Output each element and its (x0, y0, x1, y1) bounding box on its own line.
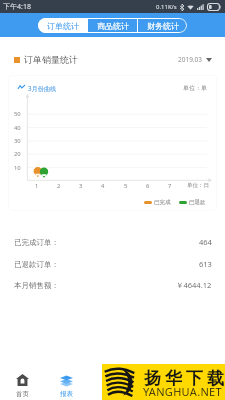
staticText: 单位：日 (187, 182, 209, 189)
staticText: 报表 (60, 390, 73, 398)
staticText: 已退款订单： (14, 260, 59, 269)
staticText: 4 (101, 182, 105, 190)
staticText: 扬华下载 (142, 368, 225, 389)
staticText: 订单统计 (47, 21, 79, 31)
staticText: 30 (14, 137, 21, 145)
staticText: 下午4:18 (3, 2, 31, 12)
button[interactable]: 本月销售额： (14, 277, 212, 293)
staticText: 3 (79, 182, 83, 190)
button[interactable]: 商品统计 (88, 18, 137, 33)
staticText: 已完成 (154, 199, 171, 206)
staticText: 首页 (16, 390, 29, 398)
staticText: 单位：单 (183, 84, 207, 92)
staticText: 0.11K/s (156, 3, 177, 11)
staticText: 已退款 (189, 199, 206, 206)
staticText: 50 (14, 110, 21, 118)
staticText: 2019.03 (178, 55, 203, 64)
staticText: 商品统计 (97, 21, 129, 31)
staticText: 已完成订单： (14, 238, 59, 247)
staticText: 本月销售额： (14, 281, 59, 290)
button[interactable]: 已退款订单： (14, 256, 212, 272)
button[interactable]: 已完成订单： (14, 234, 212, 250)
staticText: 20 (14, 150, 21, 158)
staticText: 5 (124, 182, 128, 190)
staticText: YANGHUA.NET (143, 384, 222, 399)
staticText: 财务统计 (147, 21, 179, 31)
staticText: 10 (14, 164, 21, 172)
button[interactable]: 财务统计 (138, 18, 187, 33)
staticText: 1 (35, 182, 39, 190)
staticText: 613 (199, 259, 212, 269)
staticText: 6 (146, 182, 150, 190)
staticText: 2 (57, 182, 61, 190)
staticText: 464 (199, 237, 212, 247)
staticText: 40 (14, 124, 21, 132)
button[interactable]: 首页 (5, 371, 39, 400)
staticText: 3月份曲线 (28, 84, 57, 92)
staticText: 7 (168, 182, 172, 190)
button[interactable]: 报表 (49, 371, 83, 400)
staticText: 订单销量统计 (24, 54, 78, 65)
button[interactable]: 2019.03 (176, 52, 214, 67)
staticText: ￥4644.12 (176, 280, 212, 290)
button[interactable]: 订单统计 (38, 18, 87, 33)
